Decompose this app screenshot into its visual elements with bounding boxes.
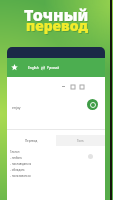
staticText: - наслаждаться (10, 162, 32, 166)
staticText: enjoy (12, 105, 21, 110)
staticText: Толк (77, 139, 84, 143)
staticText: Точный (24, 4, 89, 26)
staticText: - любить (10, 156, 23, 160)
button[interactable]: Share (77, 82, 86, 91)
staticText: Глагол (10, 150, 20, 154)
staticText: - обладать (10, 168, 25, 172)
button[interactable]: Перевод (7, 135, 56, 146)
staticText: Перевод (25, 139, 38, 143)
button[interactable]: Favorites (9, 62, 20, 73)
staticText: Точный (25, 5, 90, 27)
button[interactable]: Copy (68, 82, 77, 91)
button[interactable]: English (28, 66, 60, 70)
button[interactable]: Толк (56, 135, 105, 146)
staticText: Русский (47, 66, 60, 70)
staticText: - пользоваться (10, 174, 31, 178)
button[interactable]: Translate (87, 99, 98, 110)
staticText: перевод (27, 17, 89, 36)
staticText: English (28, 66, 39, 70)
staticText: перевод (26, 16, 88, 35)
button[interactable]: Clear text (59, 82, 68, 91)
button[interactable]: Listen (87, 153, 94, 160)
